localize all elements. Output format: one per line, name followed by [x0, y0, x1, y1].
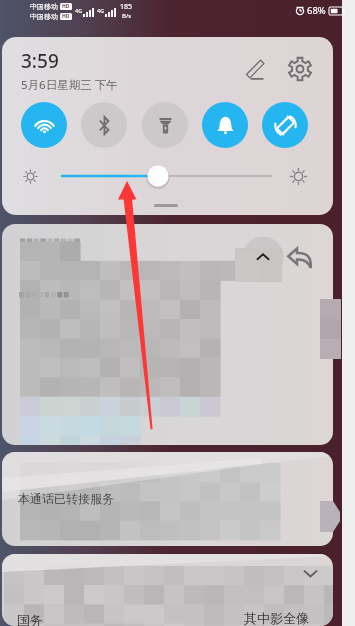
staticText: 国务: [17, 612, 43, 626]
button[interactable]: Settings: [284, 53, 316, 85]
staticText: 4G: [75, 7, 83, 14]
staticText: 中国移动: [30, 12, 58, 21]
staticText: 本通话已转接服务: [18, 491, 114, 506]
staticText: 5月6日星期三 下午: [21, 77, 118, 93]
button[interactable]: Collapse: [2, 224, 333, 445]
staticText: 3:59: [21, 48, 59, 74]
staticText: 68%: [307, 4, 326, 17]
button[interactable]: 国务: [2, 554, 333, 626]
staticText: HD: [62, 3, 70, 10]
button[interactable]: Edit quick settings: [239, 53, 271, 85]
button[interactable]: Reply: [284, 242, 314, 272]
staticText: 其中影全像: [244, 610, 309, 626]
button[interactable]: Brightness: [50, 164, 285, 188]
staticText: B/s: [122, 12, 132, 20]
button[interactable]: Raise brightness: [287, 165, 309, 187]
button[interactable]: Expand: [296, 559, 324, 587]
button[interactable]: Bluetooth: [81, 102, 127, 148]
staticText: 4G: [97, 7, 105, 14]
staticText: HD: [62, 13, 70, 20]
staticText: 185: [120, 2, 133, 12]
button[interactable]: Flashlight: [142, 102, 188, 148]
button[interactable]: 本通话已转接服务: [2, 452, 333, 546]
staticText: 中国移动: [30, 2, 58, 11]
button[interactable]: Lower brightness: [19, 165, 41, 187]
button[interactable]: Auto rotate: [262, 102, 308, 148]
button[interactable]: Sound: [202, 102, 248, 148]
button[interactable]: Wi-Fi: [21, 102, 67, 148]
button[interactable]: Collapse: [249, 243, 277, 271]
